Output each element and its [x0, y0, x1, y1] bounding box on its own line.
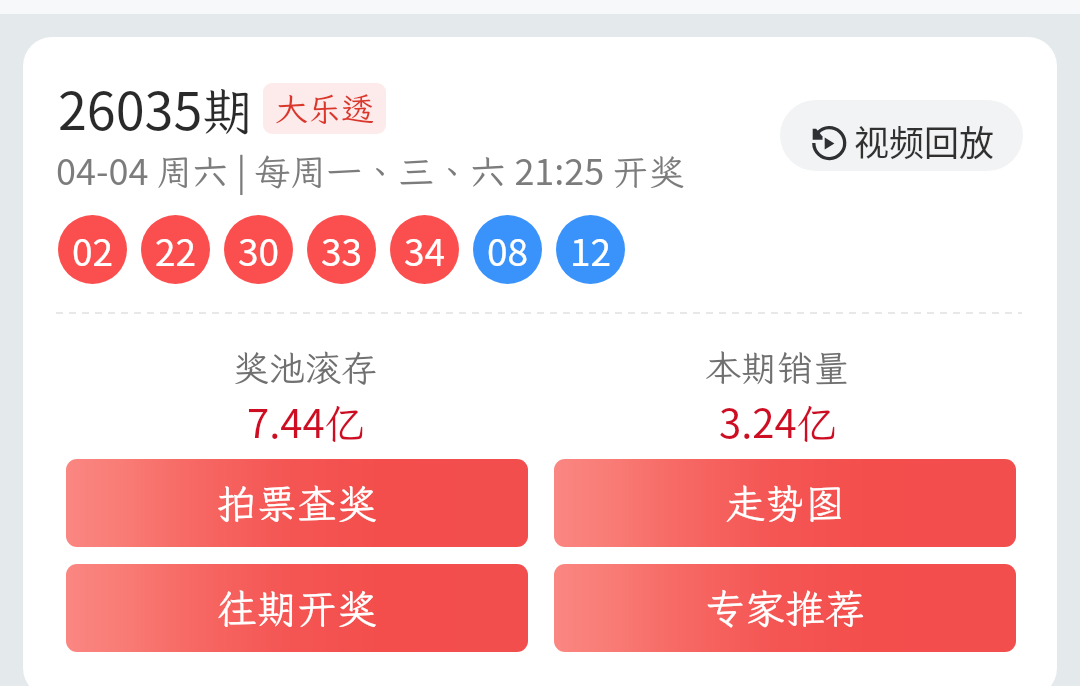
staticText: 30	[238, 223, 280, 277]
staticText: 02	[72, 223, 114, 277]
staticText: 7.44亿	[247, 392, 365, 450]
button[interactable]: 专家推荐	[554, 564, 1016, 652]
staticText: 34	[404, 223, 446, 277]
button[interactable]: Video replay	[780, 100, 1023, 171]
staticText: 08	[487, 223, 529, 277]
staticText: 大乐透	[275, 87, 374, 130]
staticText: 拍票查奖	[217, 477, 377, 530]
staticText: 22	[155, 223, 197, 277]
button[interactable]: 走势图	[554, 459, 1016, 547]
staticText: 奖池滚存	[233, 344, 378, 391]
staticText: 04-04 周六 | 每周一、三、六 21:25 开奖	[56, 143, 685, 195]
staticText: 专家推荐	[705, 582, 865, 635]
staticText: 本期销量	[705, 344, 850, 391]
staticText: 往期开奖	[217, 582, 377, 635]
button[interactable]: 拍票查奖	[66, 459, 528, 547]
staticText: 走势图	[725, 477, 845, 530]
staticText: 26035期	[58, 70, 255, 145]
button[interactable]: 往期开奖	[66, 564, 528, 652]
staticText: 3.24亿	[719, 392, 837, 450]
staticText: 视频回放	[854, 115, 995, 166]
other: Video replay	[811, 125, 847, 161]
staticText: 12	[570, 223, 612, 277]
button[interactable]: 26035期	[41, 55, 749, 303]
staticText: 33	[321, 223, 363, 277]
